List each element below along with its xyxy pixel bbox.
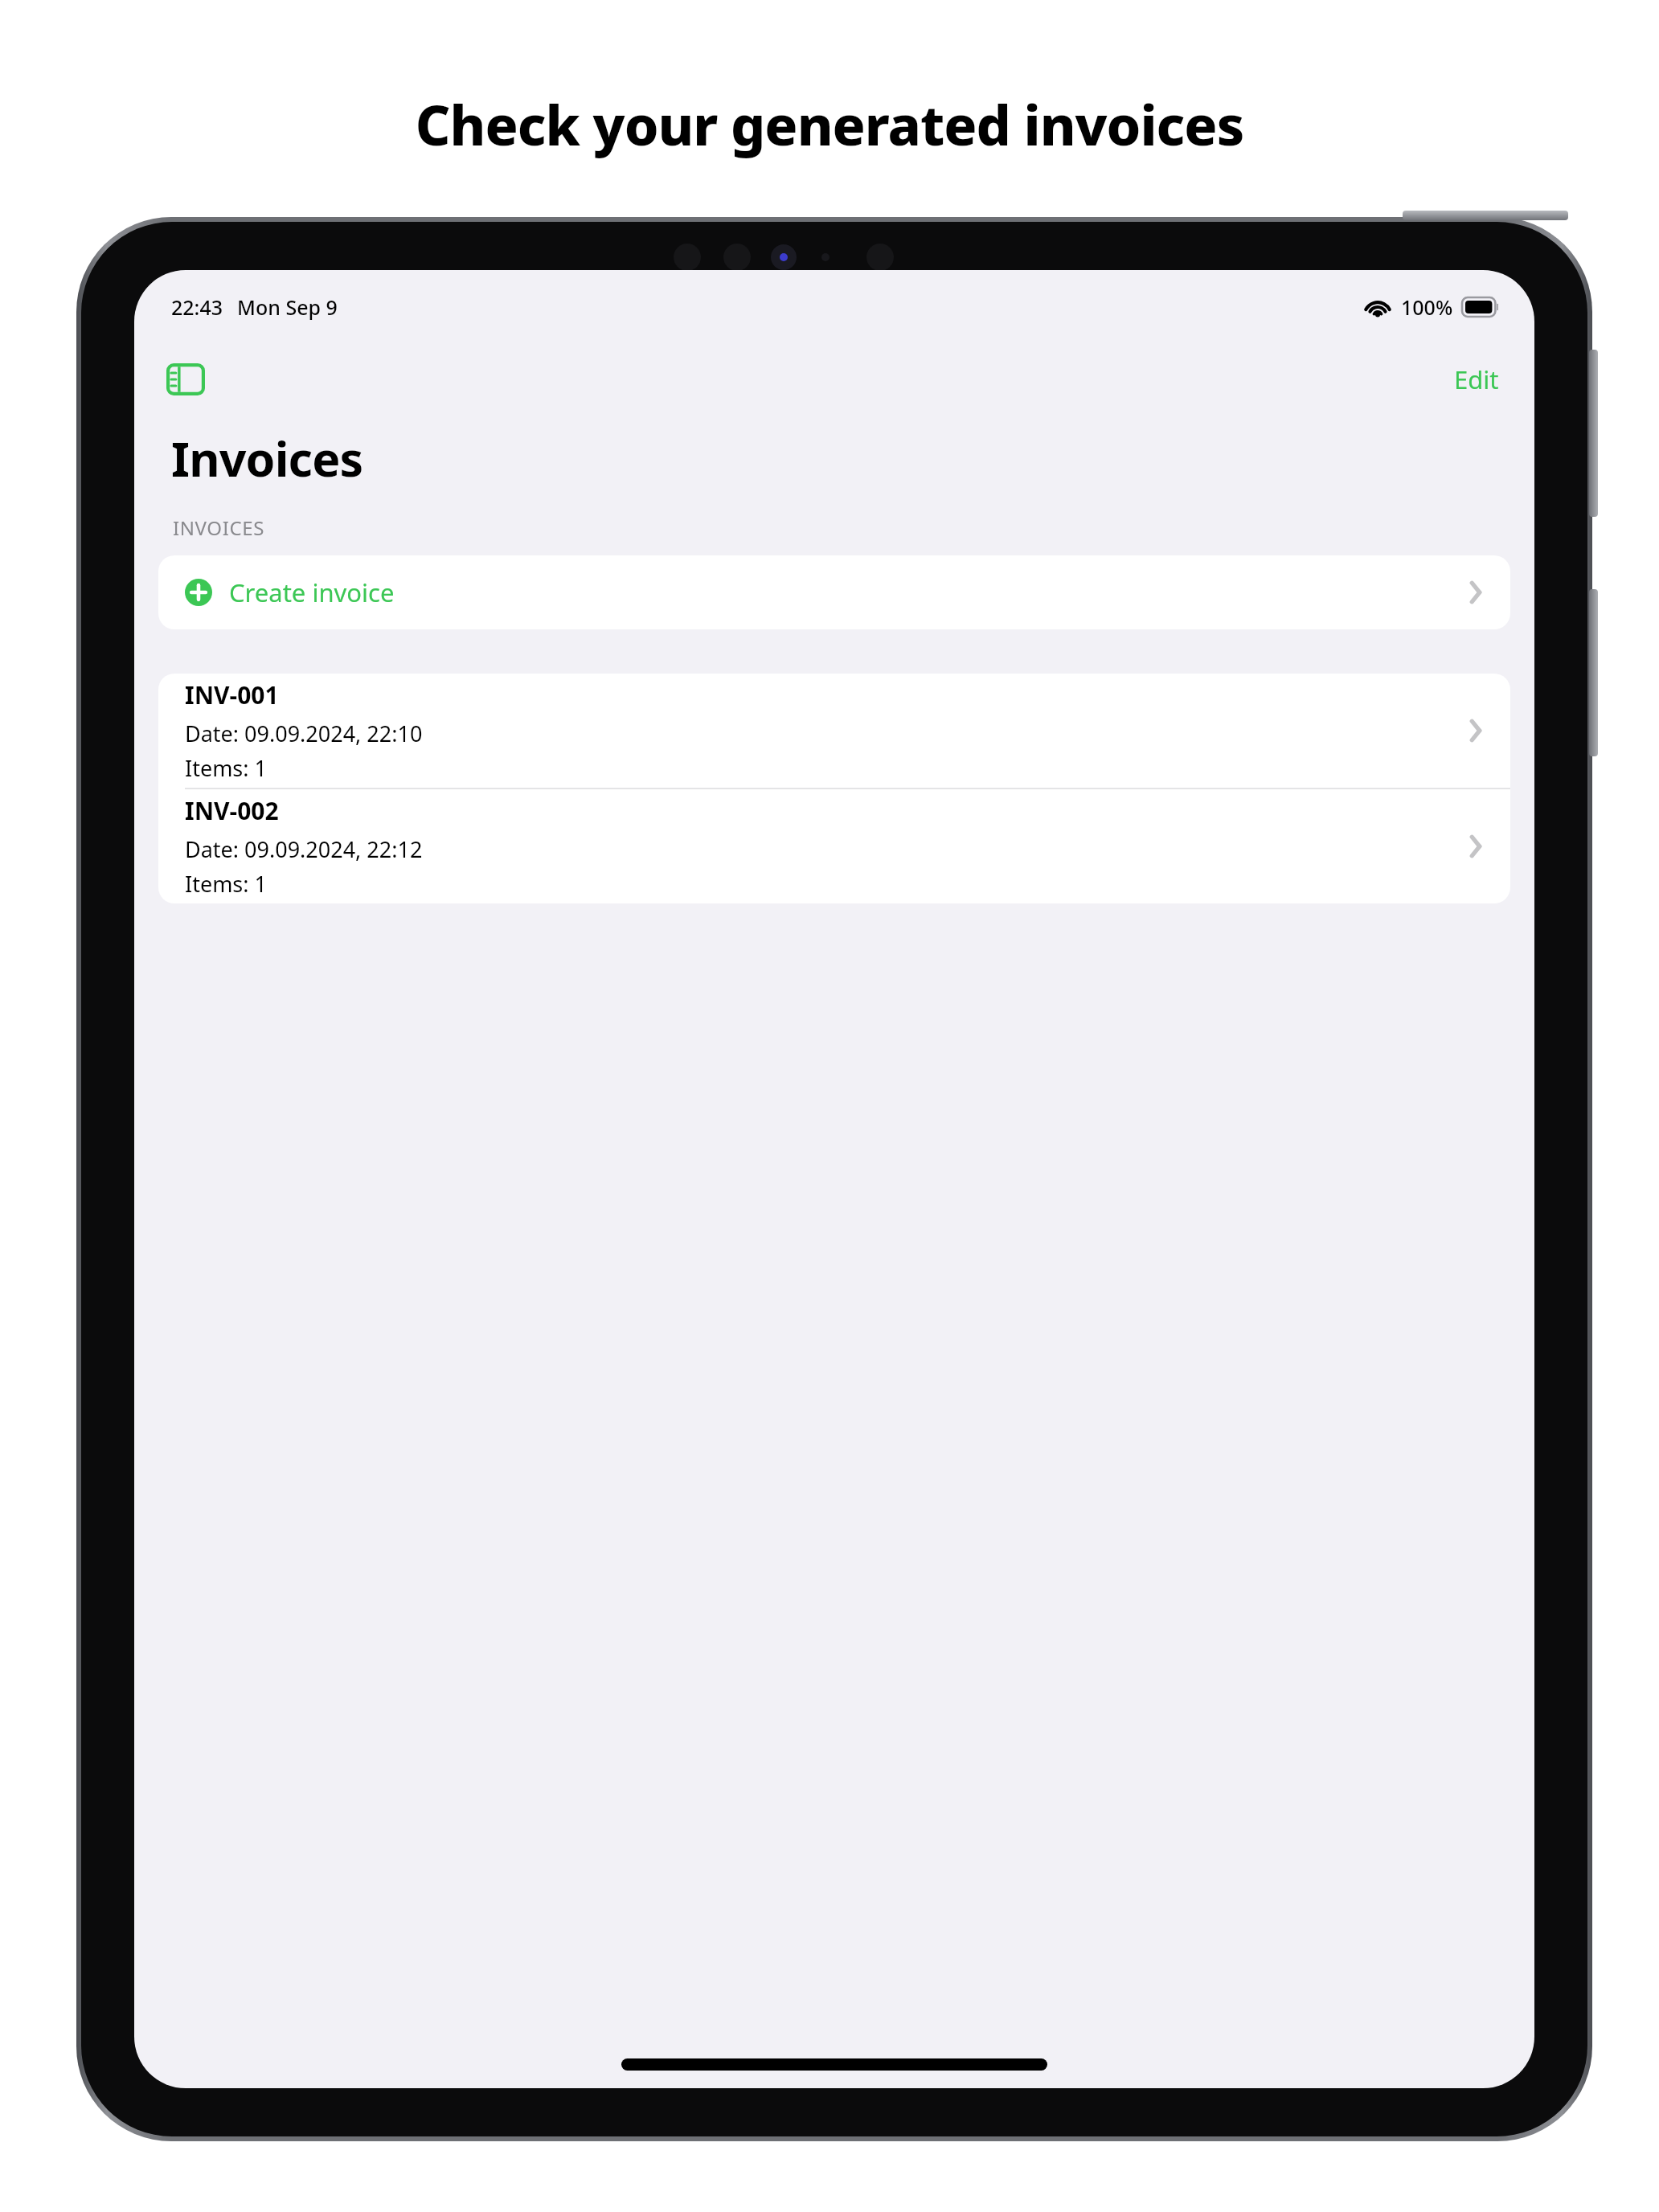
staticText: Invoices xyxy=(171,426,363,490)
staticText: Mon Sep 9 xyxy=(237,293,338,321)
staticText: 22:43 xyxy=(171,293,223,321)
staticText: INV-002 xyxy=(185,794,279,827)
button[interactable]: Edit xyxy=(1440,353,1514,406)
staticText: INV-001 xyxy=(185,678,279,711)
staticText: INVOICES xyxy=(173,514,264,541)
staticText: Check your generated invoices xyxy=(0,87,1659,162)
staticText: Edit xyxy=(1454,363,1499,396)
button[interactable]: INV-001 xyxy=(158,674,1510,788)
staticText: Items: 1 xyxy=(185,753,268,783)
staticText: Create invoice xyxy=(229,576,395,609)
staticText: Items: 1 xyxy=(185,869,268,899)
button[interactable]: INV-002 xyxy=(158,789,1510,903)
staticText: 100% xyxy=(1401,293,1453,321)
button[interactable]: Create invoice xyxy=(158,555,1510,629)
staticText: Date: 09.09.2024, 22:12 xyxy=(185,834,423,864)
button[interactable]: Toggle sidebar xyxy=(155,349,216,410)
staticText: Date: 09.09.2024, 22:10 xyxy=(185,719,423,748)
